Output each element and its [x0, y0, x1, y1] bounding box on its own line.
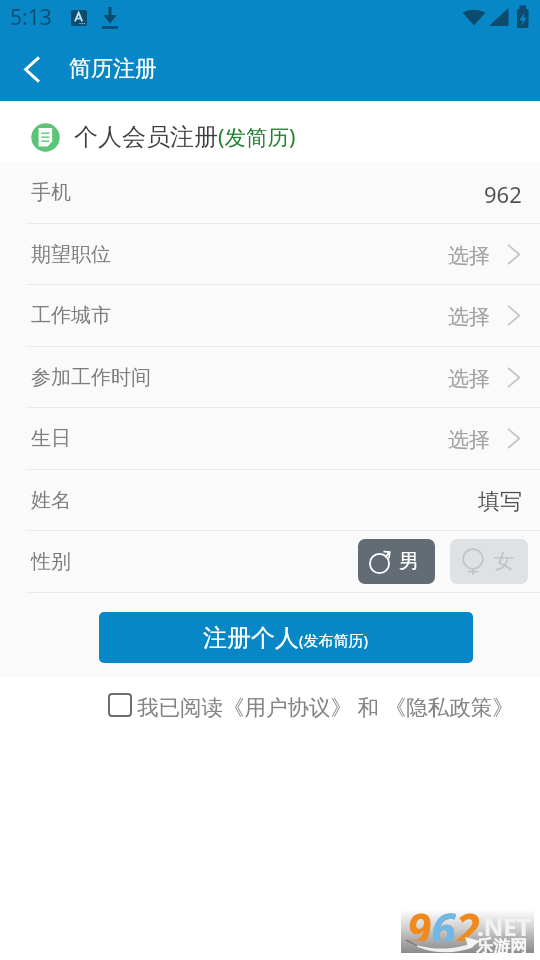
staticText: 男	[399, 549, 419, 574]
staticText: 962	[484, 179, 522, 209]
staticText: 女	[494, 549, 514, 574]
staticText: 我已阅读《用户协议》 和 《隐私政策》	[137, 692, 514, 721]
button[interactable]: 生日	[0, 408, 540, 470]
button[interactable]: 手机	[0, 162, 540, 224]
staticText: 性别	[31, 549, 71, 574]
staticText: 手机	[31, 180, 71, 205]
staticText: 选择	[448, 243, 490, 269]
staticText: 注册个人(发布简历)	[203, 623, 369, 653]
button[interactable]: 期望职位	[0, 224, 540, 286]
staticText: 选择	[448, 366, 490, 392]
staticText: 填写	[478, 488, 522, 516]
staticText: 选择	[448, 304, 490, 330]
staticText: 生日	[31, 426, 71, 451]
button[interactable]: 男	[358, 539, 435, 584]
staticText: 6	[431, 899, 456, 941]
staticText: 期望职位	[31, 242, 111, 267]
button[interactable]: 注册个人(发布简历)	[99, 612, 473, 663]
staticText: 个人会员注册(发简历)	[74, 122, 296, 152]
staticText: 工作城市	[31, 303, 111, 328]
staticText: 乐游网	[476, 936, 527, 957]
button[interactable]: 女	[450, 539, 528, 584]
button[interactable]: Agree checkbox	[108, 693, 132, 717]
staticText: 参加工作时间	[31, 365, 151, 390]
staticText: 简历注册	[69, 55, 157, 83]
staticText: 选择	[448, 427, 490, 453]
staticText: .NET	[477, 910, 531, 943]
button[interactable]: 参加工作时间	[0, 347, 540, 409]
button[interactable]: Back	[0, 36, 60, 101]
staticText: 姓名	[31, 488, 71, 513]
button[interactable]: 姓名	[0, 470, 540, 532]
staticText: 962	[407, 899, 480, 941]
button[interactable]: 工作城市	[0, 285, 540, 347]
staticText: 5:13	[10, 3, 52, 32]
